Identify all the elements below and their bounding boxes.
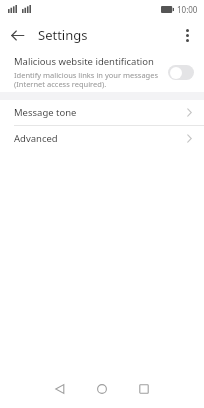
button[interactable]: Malicious website identification toggle [168, 65, 194, 80]
staticText: Identify malicious links in your message… [14, 70, 159, 90]
button[interactable]: Home [81, 370, 123, 408]
staticText: Settings [38, 26, 88, 44]
staticText: Malicious website identification [14, 55, 154, 68]
staticText: Advanced [14, 132, 187, 145]
staticText: Message tone [14, 106, 187, 119]
button[interactable]: Back [0, 18, 34, 52]
button[interactable]: More options [170, 18, 204, 52]
button[interactable]: Malicious website identification [0, 52, 204, 92]
button[interactable]: Advanced [0, 126, 204, 151]
button[interactable]: Back [39, 370, 81, 408]
button[interactable]: Recents [123, 370, 165, 408]
staticText: 10:00 [177, 4, 198, 15]
button[interactable]: Message tone [0, 100, 204, 125]
